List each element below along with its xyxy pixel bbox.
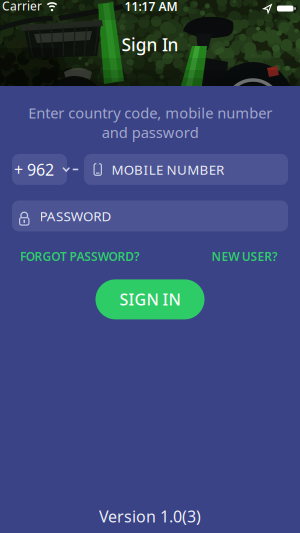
button[interactable]: Password	[12, 200, 288, 231]
staticText: + 962	[14, 159, 54, 180]
staticText: 11:17 AM	[124, 0, 177, 14]
staticText: PASSWORD	[39, 207, 112, 225]
staticText: Carrier	[2, 0, 42, 14]
button[interactable]: Mobile number	[84, 154, 288, 185]
staticText: NEW USER?	[212, 248, 278, 264]
button[interactable]: NEW USER?	[212, 248, 278, 264]
staticText: FORGOT PASSWORD?	[20, 248, 140, 264]
staticText: Enter country code, mobile number and pa…	[28, 103, 272, 142]
button[interactable]: + 962	[12, 154, 67, 185]
button[interactable]: FORGOT PASSWORD?	[20, 248, 140, 264]
staticText: MOBILE NUMBER	[111, 161, 224, 178]
button[interactable]: SIGN IN	[95, 279, 204, 319]
staticText: Version 1.0(3)	[99, 506, 201, 527]
staticText: Sign In	[121, 33, 179, 56]
staticText: SIGN IN	[119, 289, 180, 310]
